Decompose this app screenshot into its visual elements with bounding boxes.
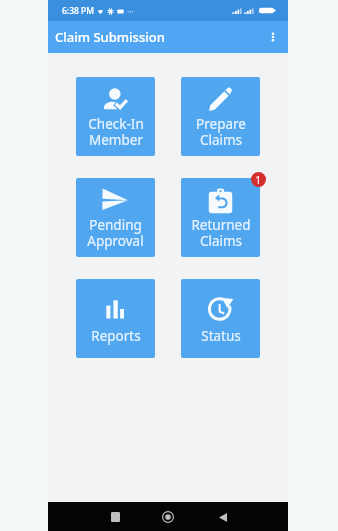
button[interactable]: Status — [181, 279, 260, 358]
staticText: 6:38 PM — [62, 5, 95, 17]
button[interactable]: Reports — [76, 279, 155, 358]
staticText: Returned Claims — [191, 217, 251, 249]
button[interactable]: Returned Claims — [181, 178, 260, 257]
button[interactable]: Check-In Member — [76, 77, 155, 156]
staticText: Check-In Member — [88, 116, 144, 148]
button[interactable]: Back — [210, 504, 236, 530]
button[interactable]: Recent apps — [102, 504, 128, 530]
button[interactable]: Home — [155, 504, 181, 530]
staticText: Prepare Claims — [196, 116, 246, 148]
button[interactable]: Prepare Claims — [181, 77, 260, 156]
staticText: Reports — [91, 328, 141, 344]
staticText: Pending Approval — [87, 217, 144, 249]
button[interactable]: More options — [260, 24, 286, 50]
staticText: 1 — [255, 172, 262, 187]
staticText: Claim Submission — [55, 28, 165, 46]
button[interactable]: Pending Approval — [76, 178, 155, 257]
staticText: Status — [201, 328, 241, 344]
